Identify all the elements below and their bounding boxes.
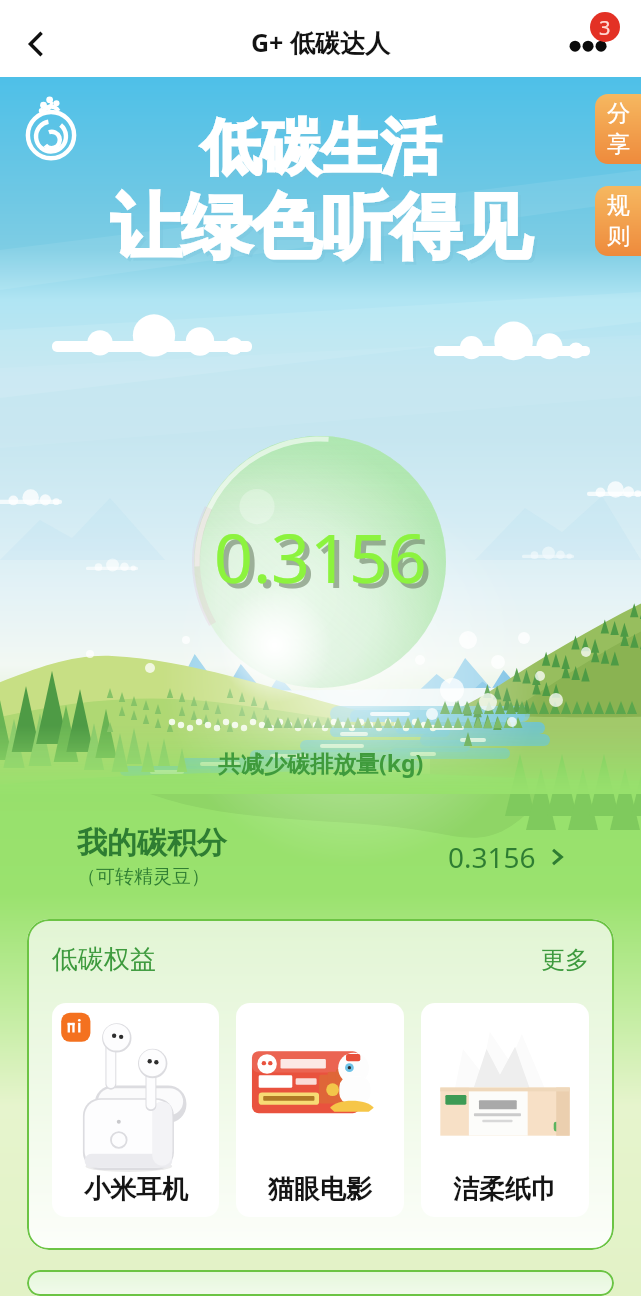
staticText: 让绿色听得见 [114,187,534,275]
button[interactable]: 更多 [541,945,589,975]
staticText: 让绿色听得见 [111,184,531,272]
staticText: 0.3156 [214,510,427,603]
staticText: 低碳生活 [201,110,441,186]
staticText: 小米耳机 [84,1173,188,1206]
staticText: （可转精灵豆） [77,865,210,889]
staticText: 0.3156 [448,838,536,876]
staticText: 分享 [606,99,631,159]
button[interactable]: More options [568,5,636,73]
staticText: 更多 [541,945,589,975]
button[interactable]: 规则 [595,186,641,256]
button[interactable]: 我的碳积分 [0,794,641,919]
staticText: 洁柔纸巾 [453,1173,557,1206]
staticText: 规则 [606,191,631,251]
staticText: 低碳权益 [52,943,156,976]
button[interactable]: 分享 [595,94,641,164]
staticText: 3 [599,14,611,41]
button[interactable]: 洁柔纸巾 [421,1003,589,1217]
staticText: 0.3156 [219,515,432,608]
button[interactable]: 猫眼电影 [236,1003,404,1217]
staticText: 共减少碳排放量(kg) [218,747,424,778]
button[interactable]: Back [8,16,64,72]
staticText: 我的碳积分 [77,824,227,862]
staticText: 低碳生活 [204,113,444,189]
staticText: 猫眼电影 [268,1173,372,1206]
button[interactable]: 小米耳机 [52,1003,219,1217]
staticText: G+ 低碳达人 [251,25,390,59]
